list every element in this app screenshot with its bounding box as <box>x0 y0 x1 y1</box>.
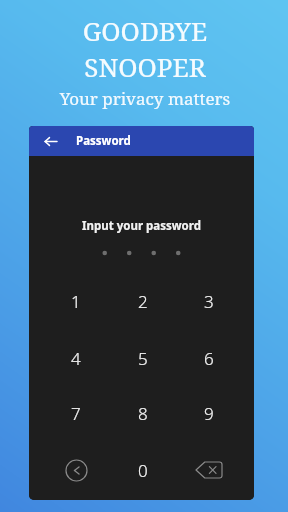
staticText: Password <box>76 133 131 149</box>
button[interactable]: 6 <box>177 333 241 383</box>
staticText: 7 <box>71 402 81 425</box>
staticText: Your privacy matters <box>1 87 288 110</box>
button[interactable]: Backspace <box>177 445 241 495</box>
staticText: Input your password <box>29 218 254 234</box>
button[interactable]: Cancel <box>44 445 108 495</box>
staticText: 8 <box>138 402 148 425</box>
button[interactable]: 7 <box>44 388 108 438</box>
staticText: 4 <box>71 347 81 370</box>
button[interactable]: 2 <box>111 276 175 326</box>
button[interactable]: 9 <box>177 388 241 438</box>
staticText: 2 <box>138 290 148 313</box>
button[interactable]: Back <box>38 129 62 153</box>
button[interactable]: 5 <box>111 333 175 383</box>
button[interactable]: 4 <box>44 333 108 383</box>
button[interactable]: 3 <box>177 276 241 326</box>
staticText: 6 <box>204 347 214 370</box>
staticText: 1 <box>71 290 81 313</box>
button[interactable]: 1 <box>44 276 108 326</box>
staticText: 3 <box>204 290 214 313</box>
staticText: SNOOPER <box>1 49 288 84</box>
button[interactable]: 0 <box>111 445 175 495</box>
staticText: GOODBYE <box>1 13 288 48</box>
staticText: 5 <box>138 347 148 370</box>
button[interactable]: 8 <box>111 388 175 438</box>
staticText: 9 <box>204 402 214 425</box>
staticText: 0 <box>138 459 148 482</box>
